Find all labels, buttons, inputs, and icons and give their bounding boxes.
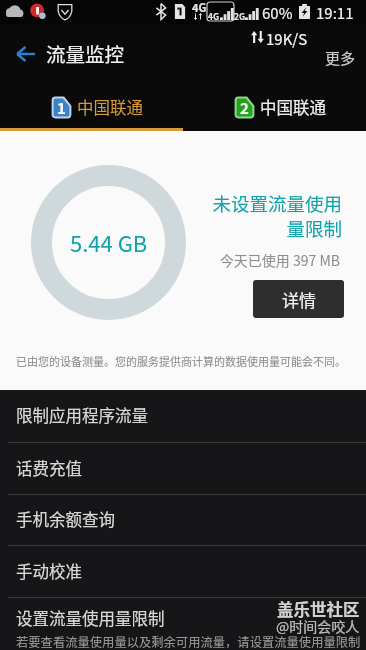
staticText: 5.44 GB bbox=[70, 226, 148, 258]
staticText: 1 bbox=[57, 97, 66, 119]
button[interactable]: 手动校准 bbox=[0, 546, 366, 597]
staticText: 限制应用程序流量 bbox=[16, 403, 148, 427]
staticText: @时间会咬人 bbox=[276, 616, 360, 636]
staticText: 手动校准 bbox=[16, 559, 82, 583]
staticText: 中国联通 bbox=[77, 95, 143, 119]
button[interactable]: 话费充值 bbox=[0, 443, 366, 494]
button[interactable]: 详情 bbox=[253, 280, 344, 318]
staticText: 4G bbox=[208, 10, 220, 22]
staticText: 已由您的设备测量。您的服务提供商计算的数据使用量可能会不同。 bbox=[16, 353, 346, 369]
staticText: 设置流量使用量限制 bbox=[16, 606, 165, 630]
staticText: 盖乐世社区 bbox=[277, 597, 360, 621]
button[interactable]: 限制应用程序流量 bbox=[0, 390, 366, 442]
button[interactable]: Back bbox=[5, 34, 45, 74]
staticText: 话费充值 bbox=[16, 456, 82, 480]
staticText: 今天已使用 397 MB bbox=[140, 250, 340, 270]
staticText: 60% bbox=[262, 2, 293, 24]
staticText: 2G bbox=[234, 10, 246, 22]
staticText: 2 bbox=[240, 97, 249, 119]
staticText: 4G bbox=[192, 0, 207, 15]
staticText: 中国联通 bbox=[260, 95, 326, 119]
staticText: 详情 bbox=[282, 287, 316, 312]
button[interactable]: 更多 bbox=[325, 47, 356, 69]
staticText: 手机余额查询 bbox=[16, 507, 115, 531]
staticText: 流量监控 bbox=[46, 39, 125, 67]
button[interactable]: 手机余额查询 bbox=[0, 495, 366, 545]
button[interactable]: 2 bbox=[183, 86, 366, 128]
button[interactable]: 1 bbox=[0, 86, 183, 128]
button[interactable]: 设置流量使用量限制 bbox=[0, 598, 366, 650]
staticText: 若要查看流量使用量以及剩余可用流量，请设置流量使用量限制 bbox=[16, 633, 361, 650]
staticText: 19K/S bbox=[266, 28, 308, 50]
staticText: 19:11 bbox=[316, 2, 354, 24]
staticText: 未设置流量使用 量限制 bbox=[142, 190, 342, 241]
